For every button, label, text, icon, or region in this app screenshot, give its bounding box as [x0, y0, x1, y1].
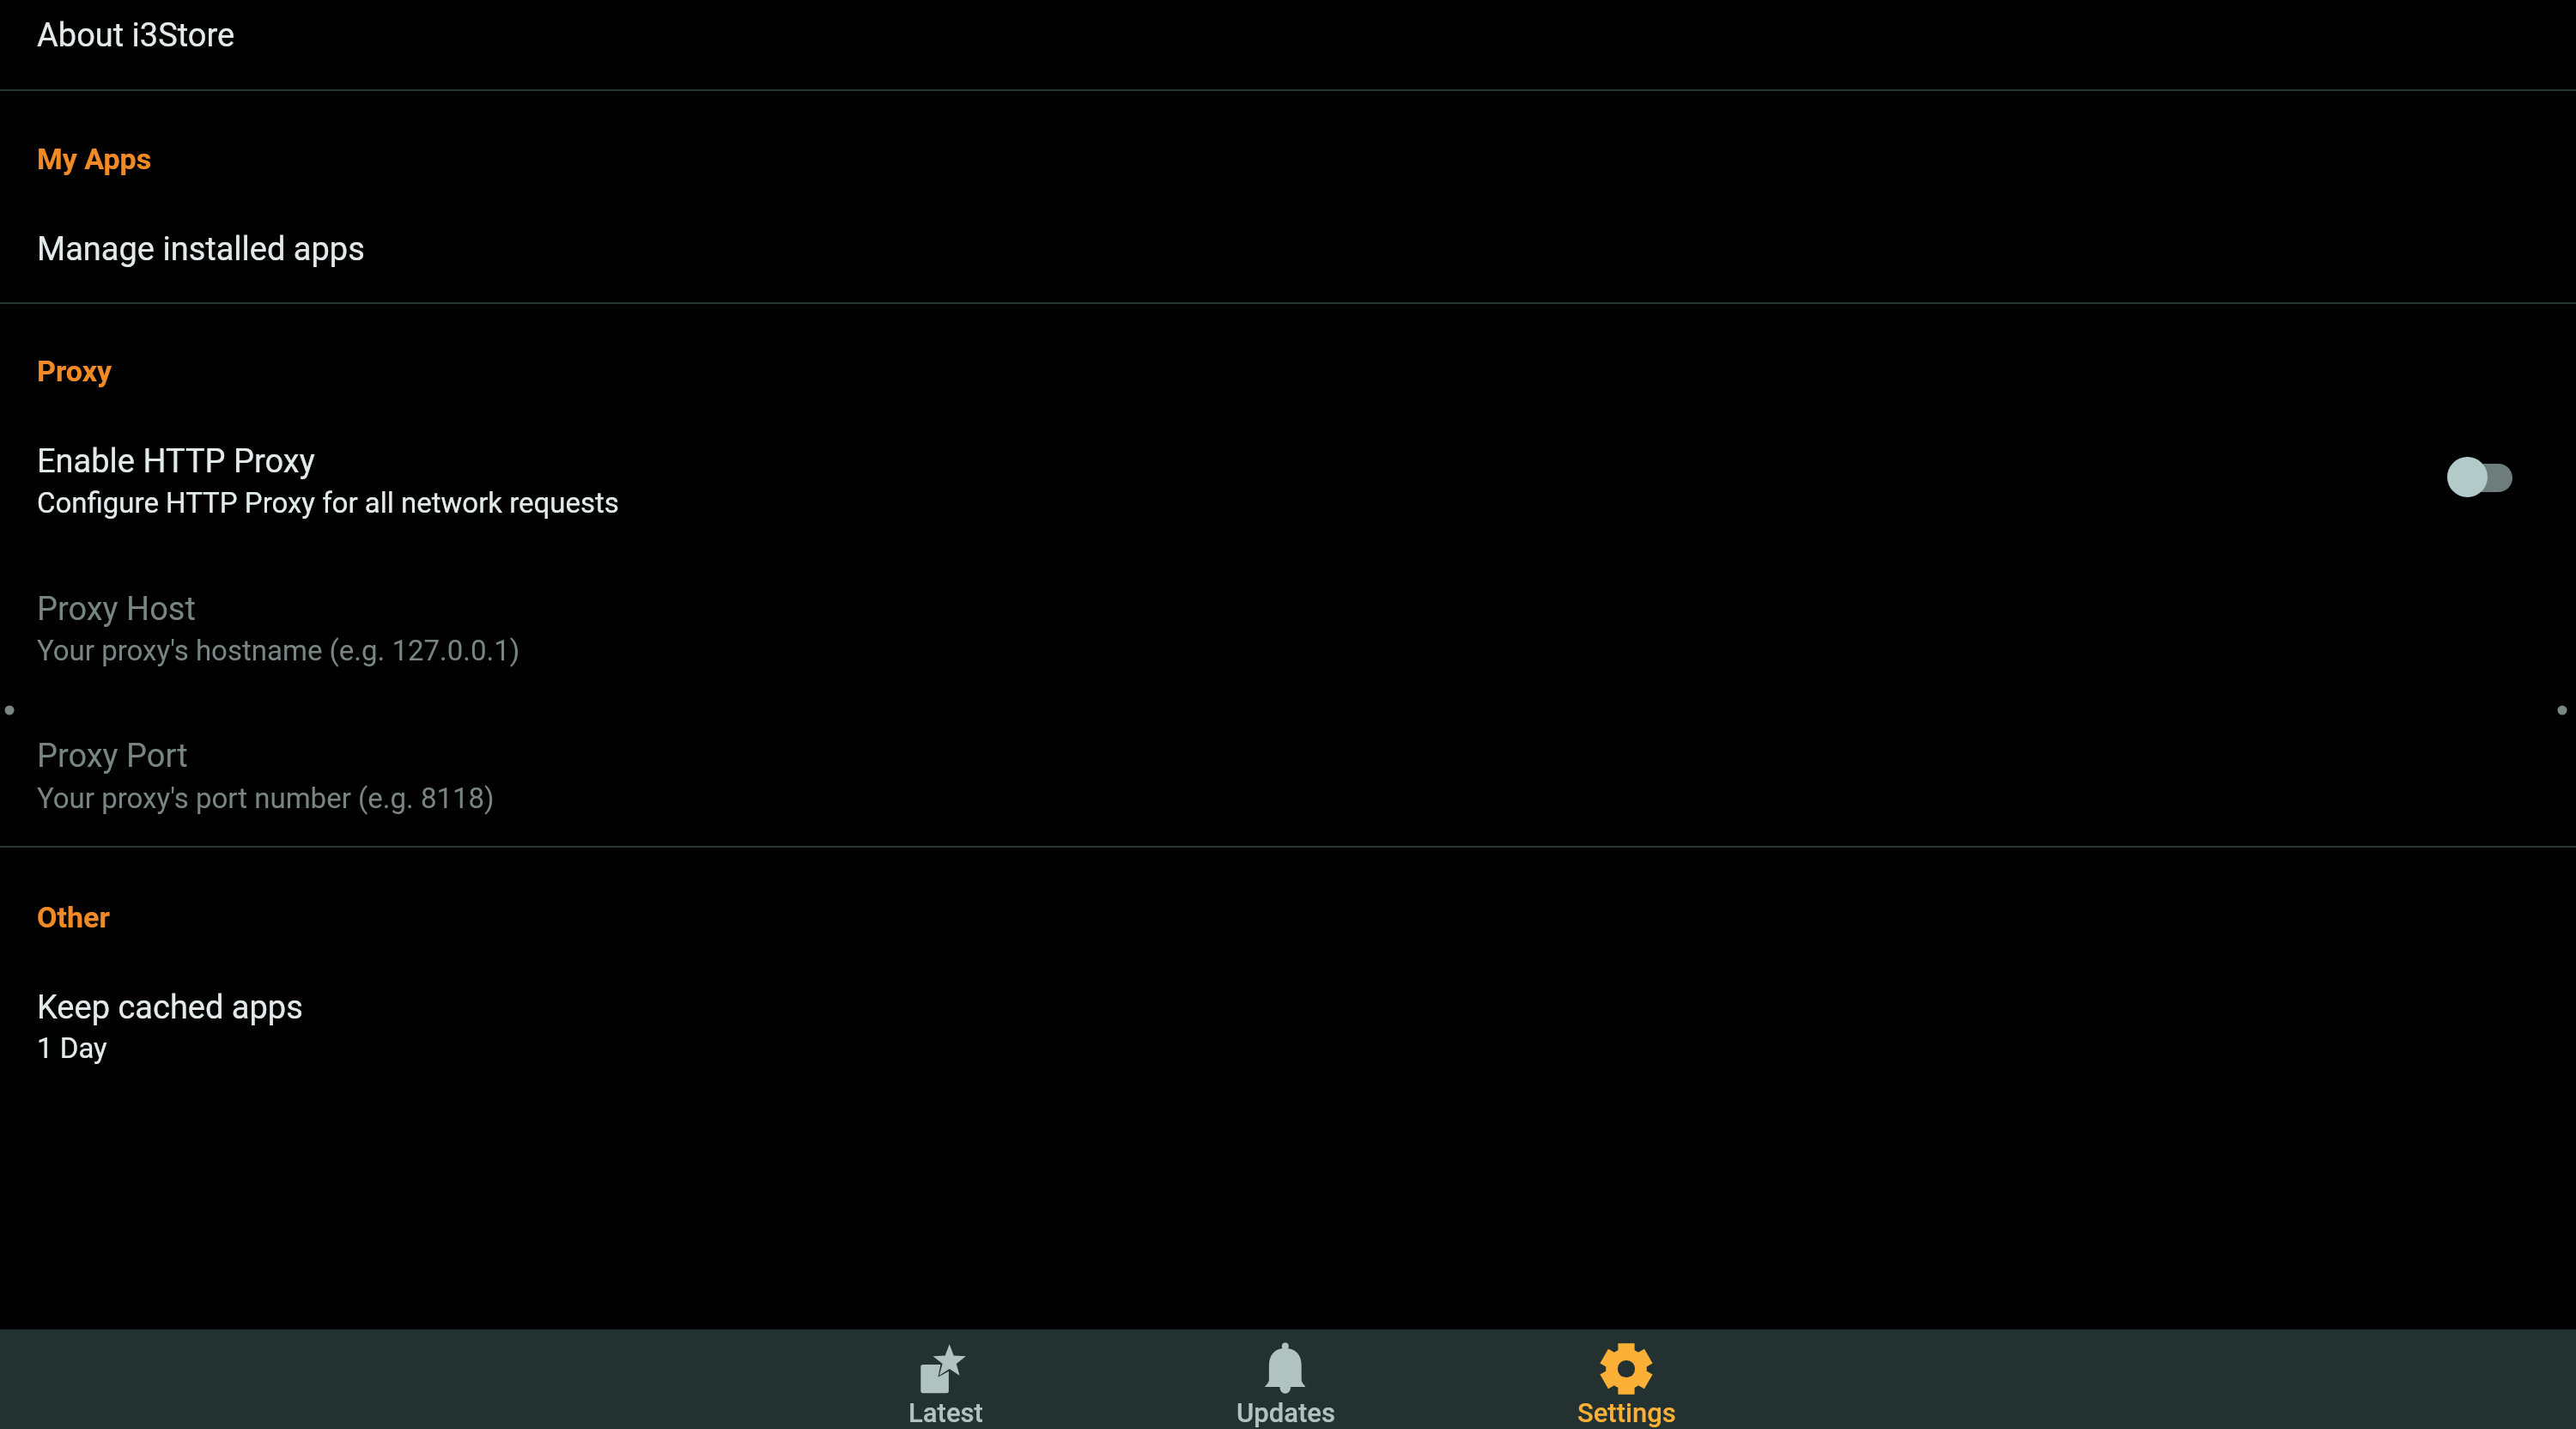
staticText: Proxy — [37, 354, 112, 388]
staticText: My Apps — [37, 142, 152, 176]
staticText: Your proxy's port number (e.g. 8118) — [37, 781, 495, 815]
staticText: Configure HTTP Proxy for all network req… — [37, 486, 619, 520]
staticText: Latest — [908, 1397, 983, 1428]
staticText: Proxy Host — [37, 590, 196, 629]
staticText: Settings — [1577, 1397, 1676, 1428]
staticText: Your proxy's hostname (e.g. 127.0.0.1) — [37, 634, 520, 667]
button[interactable]: Settings — [1456, 1329, 1796, 1429]
staticText: Proxy Port — [37, 737, 188, 775]
button[interactable]: Latest — [775, 1329, 1115, 1429]
button[interactable]: Proxy Host — [0, 550, 2576, 697]
button[interactable]: Proxy Port — [0, 697, 2576, 845]
button[interactable]: Enable HTTP Proxy — [2439, 450, 2524, 503]
button[interactable]: Manage installed apps — [0, 91, 2576, 302]
staticText: 1 Day — [37, 1031, 107, 1065]
staticText: Manage installed apps — [37, 230, 365, 269]
staticText: Other — [37, 900, 110, 934]
button[interactable]: Keep cached apps — [0, 847, 2576, 1099]
staticText: About i3Store — [37, 16, 235, 55]
button[interactable]: About i3Store — [0, 0, 2576, 89]
staticText: Keep cached apps — [37, 988, 303, 1027]
button[interactable]: Updates — [1115, 1329, 1455, 1429]
button[interactable]: Enable HTTP Proxy — [0, 304, 2576, 550]
staticText: Enable HTTP Proxy — [37, 442, 315, 481]
staticText: Updates — [1236, 1397, 1335, 1428]
